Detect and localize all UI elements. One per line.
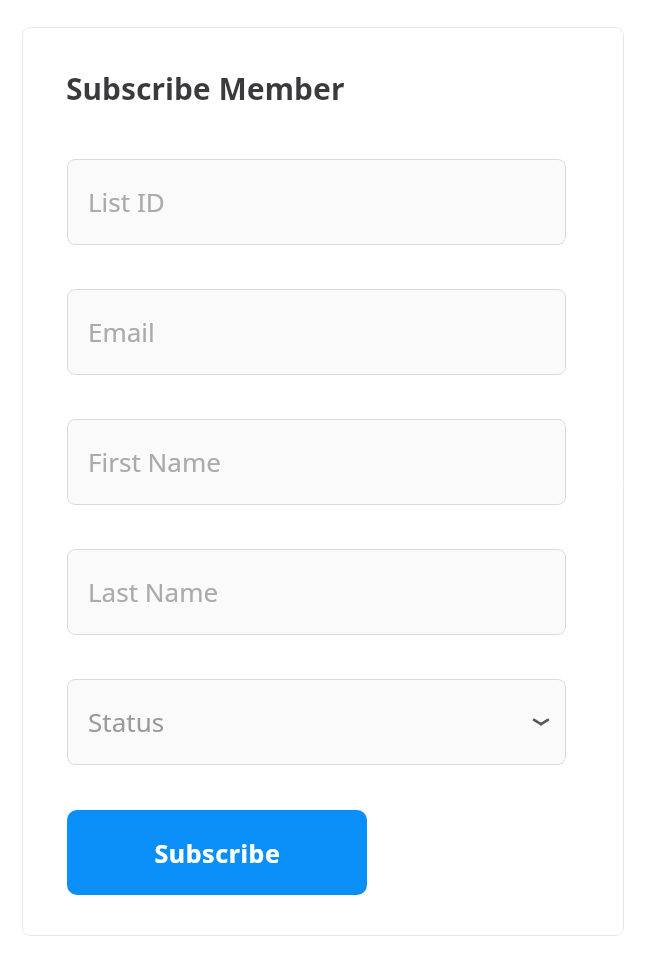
staticText: List ID [88, 184, 165, 219]
button[interactable]: First Name [67, 419, 566, 505]
button[interactable]: Email [67, 289, 566, 375]
staticText: Subscribe [154, 836, 281, 870]
staticText: Last Name [88, 574, 219, 609]
staticText: First Name [88, 444, 221, 479]
staticText: Subscribe Member [66, 68, 345, 109]
button[interactable]: Status dropdown [67, 679, 566, 765]
staticText: Email [88, 314, 155, 349]
button[interactable]: Subscribe [67, 810, 367, 895]
button[interactable]: Last Name [67, 549, 566, 635]
staticText: Status [88, 704, 165, 739]
button[interactable]: List ID [67, 159, 566, 245]
